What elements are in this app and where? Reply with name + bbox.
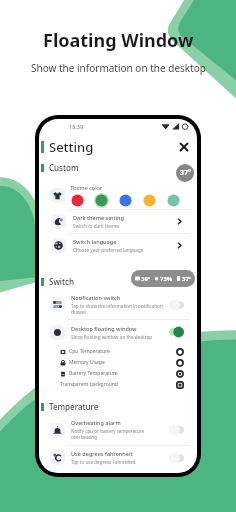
staticText: Setting — [49, 138, 94, 156]
button[interactable]: toggle — [169, 452, 184, 464]
staticText: Choose your preferred language — [73, 247, 144, 253]
button[interactable]: Cpu Temperature — [44, 346, 190, 357]
staticText: Tap to use degress Fahrenheit — [71, 459, 136, 465]
staticText: 73% — [160, 275, 173, 283]
staticText: Use degrees fahrenheit — [71, 450, 133, 457]
button[interactable]: Battery Temperature — [44, 368, 190, 379]
button[interactable]: Theme color — [44, 182, 190, 209]
button[interactable]: Memory Usage — [175, 358, 184, 367]
button[interactable]: Dark theme setting — [44, 209, 190, 233]
button[interactable]: toggle — [169, 299, 184, 311]
staticText: Dark theme setting — [73, 214, 124, 221]
button[interactable]: theme colour — [142, 193, 157, 208]
staticText: Switch to dark theme — [73, 223, 119, 229]
staticText: Battery Temperature — [69, 370, 118, 377]
button[interactable]: Floating temperature 37 degrees — [176, 164, 194, 182]
button[interactable]: Overheating alarm — [44, 415, 190, 445]
staticText: Notification switch — [71, 294, 121, 301]
staticText: Transparent background — [60, 381, 118, 388]
staticText: Tap to show the information in notificat… — [71, 303, 168, 316]
staticText: Temperature — [49, 401, 99, 412]
staticText: Theme color — [70, 184, 103, 191]
button[interactable]: Floating status widget — [131, 270, 195, 287]
staticText: Floating Window — [43, 28, 194, 53]
button[interactable]: Desktop floating window — [44, 319, 190, 345]
button[interactable]: Memory Usage — [44, 357, 190, 368]
button[interactable]: Battery Temperature — [175, 369, 184, 378]
staticText: 37° — [180, 168, 191, 178]
staticText: Notify cpu or battery temperature overhe… — [71, 428, 168, 441]
staticText: Switch — [49, 276, 75, 287]
button[interactable]: Notification switch — [44, 290, 190, 319]
staticText: Memory Usage — [69, 359, 105, 366]
staticText: Switch language — [73, 238, 117, 245]
staticText: Overheating alarm — [71, 419, 121, 426]
staticText: 39° — [141, 275, 151, 283]
button[interactable]: theme colour — [70, 193, 85, 208]
button[interactable]: Transparent background — [175, 380, 184, 389]
button[interactable]: theme colour — [94, 193, 109, 208]
staticText: 37° — [182, 275, 192, 283]
button[interactable]: theme colour — [166, 193, 181, 208]
button[interactable]: Use degrees fahrenheit — [44, 445, 190, 470]
staticText: Cpu Temperature — [69, 348, 110, 355]
button[interactable]: Transparent background — [44, 379, 190, 390]
button[interactable]: theme colour — [118, 193, 133, 208]
button[interactable]: toggle — [169, 424, 184, 436]
button[interactable]: Close — [177, 140, 191, 154]
button[interactable]: toggle — [169, 326, 184, 338]
button[interactable]: Switch language — [44, 233, 190, 257]
staticText: Desktop floating window — [71, 325, 137, 332]
staticText: Custom — [49, 162, 79, 173]
staticText: Show floating window on the desktop — [71, 334, 153, 340]
staticText: 15:39 — [69, 123, 84, 130]
staticText: Show the information on the desktop — [31, 61, 206, 75]
button[interactable]: Cpu Temperature — [175, 347, 184, 356]
